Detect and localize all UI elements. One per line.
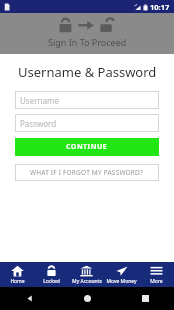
staticText: Move Money: [106, 278, 137, 285]
staticText: 10:17: [150, 2, 170, 12]
button[interactable]: More: [139, 262, 174, 287]
button[interactable]: Back: [0, 287, 58, 310]
button[interactable]: Locked: [34, 262, 69, 287]
staticText: WHAT IF I FORGOT MY PASSWORD?: [30, 168, 144, 177]
button[interactable]: Recent apps: [116, 287, 174, 310]
staticText: My Accounts: [72, 278, 102, 285]
staticText: Password: [20, 118, 57, 129]
button[interactable]: Username: [15, 91, 159, 109]
button[interactable]: CONTINUE: [15, 138, 159, 156]
staticText: Sign In To Proceed: [48, 36, 127, 48]
staticText: Home: [10, 278, 25, 285]
staticText: CONTINUE: [66, 142, 108, 152]
staticText: Username & Password: [18, 63, 157, 81]
button[interactable]: Home: [0, 262, 34, 287]
button[interactable]: WHAT IF I FORGOT MY PASSWORD?: [15, 164, 159, 181]
staticText: More: [150, 278, 163, 285]
button[interactable]: Home: [58, 287, 116, 310]
staticText: Username: [20, 95, 59, 106]
button[interactable]: Move Money: [104, 262, 139, 287]
button[interactable]: My Accounts: [69, 262, 104, 287]
staticText: Locked: [43, 278, 60, 285]
button[interactable]: Password: [15, 114, 159, 132]
